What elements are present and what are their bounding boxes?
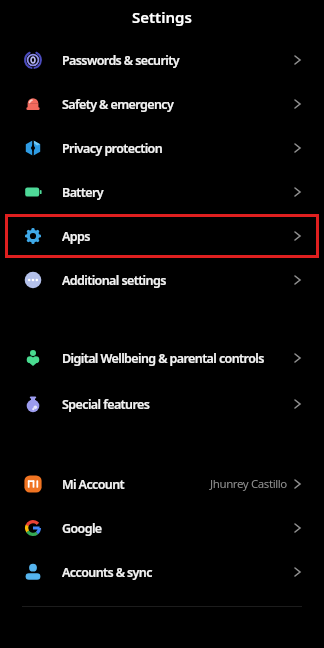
button[interactable]: Additional settings — [0, 258, 324, 302]
staticText: Additional settings — [62, 272, 166, 289]
staticText: Special features — [62, 396, 150, 413]
button[interactable]: Battery — [0, 170, 324, 214]
staticText: Jhunrey Castillo — [210, 476, 287, 492]
staticText: Mi Account — [62, 476, 125, 493]
button[interactable]: Apps — [5, 214, 319, 258]
staticText: Battery — [62, 184, 104, 201]
button[interactable]: Mi Account — [0, 462, 324, 506]
staticText: Digital Wellbeing & parental controls — [62, 350, 264, 367]
staticText: Accounts & sync — [62, 564, 152, 581]
staticText: Settings — [132, 7, 192, 27]
button[interactable]: Safety & emergency — [0, 82, 324, 126]
staticText: Safety & emergency — [62, 96, 174, 113]
staticText: Privacy protection — [62, 140, 163, 157]
button[interactable]: Accounts & sync — [0, 550, 324, 594]
staticText: Passwords & security — [62, 52, 179, 69]
button[interactable]: Digital Wellbeing & parental controls — [0, 335, 324, 381]
button[interactable]: Passwords & security — [0, 38, 324, 82]
button[interactable]: Google — [0, 506, 324, 550]
staticText: Google — [62, 520, 102, 537]
button[interactable]: Special features — [0, 381, 324, 427]
button[interactable]: Privacy protection — [0, 126, 324, 170]
staticText: Apps — [62, 228, 90, 245]
